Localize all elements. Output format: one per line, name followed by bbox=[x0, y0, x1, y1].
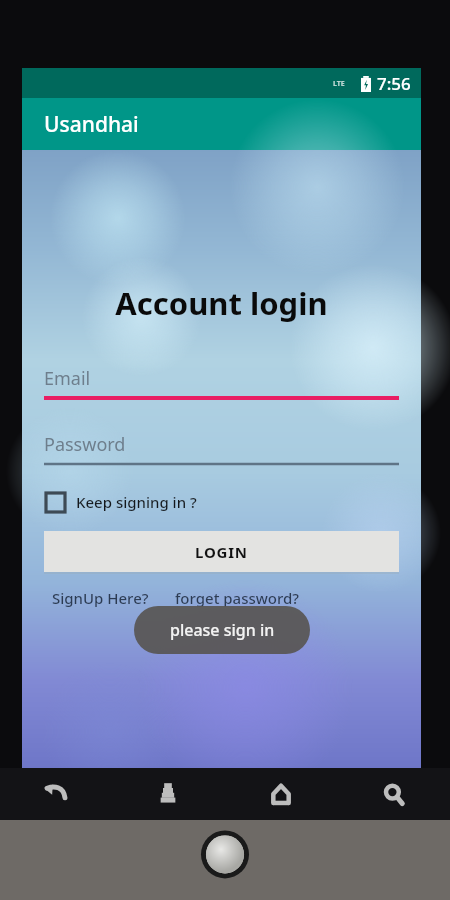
staticText: Usandhai bbox=[44, 110, 139, 139]
staticText: forget password? bbox=[175, 588, 300, 608]
button[interactable]: Back bbox=[0, 768, 112, 820]
button[interactable]: Email bbox=[44, 366, 399, 400]
staticText: 7:56 bbox=[377, 72, 411, 95]
button[interactable]: Home bbox=[224, 768, 337, 820]
button[interactable]: forget password? bbox=[175, 588, 300, 608]
staticText: LOGIN bbox=[195, 542, 248, 562]
staticText: Account login bbox=[22, 282, 421, 324]
staticText: Password bbox=[44, 432, 126, 457]
button[interactable]: Search bbox=[337, 768, 450, 820]
button[interactable]: Usandhai bbox=[22, 98, 421, 150]
staticText: SignUp Here? bbox=[52, 588, 149, 608]
button[interactable]: LOGIN bbox=[44, 531, 399, 572]
button[interactable]: Password bbox=[44, 432, 399, 466]
staticText: LTE bbox=[333, 79, 345, 89]
staticText: Keep signing in ? bbox=[76, 492, 197, 512]
button[interactable]: Keep signing in ? bbox=[44, 488, 199, 516]
button[interactable]: SignUp Here? bbox=[52, 588, 149, 608]
staticText: please sign in bbox=[170, 619, 275, 641]
staticText: Email bbox=[44, 366, 91, 391]
button[interactable]: Menu bbox=[112, 768, 224, 820]
